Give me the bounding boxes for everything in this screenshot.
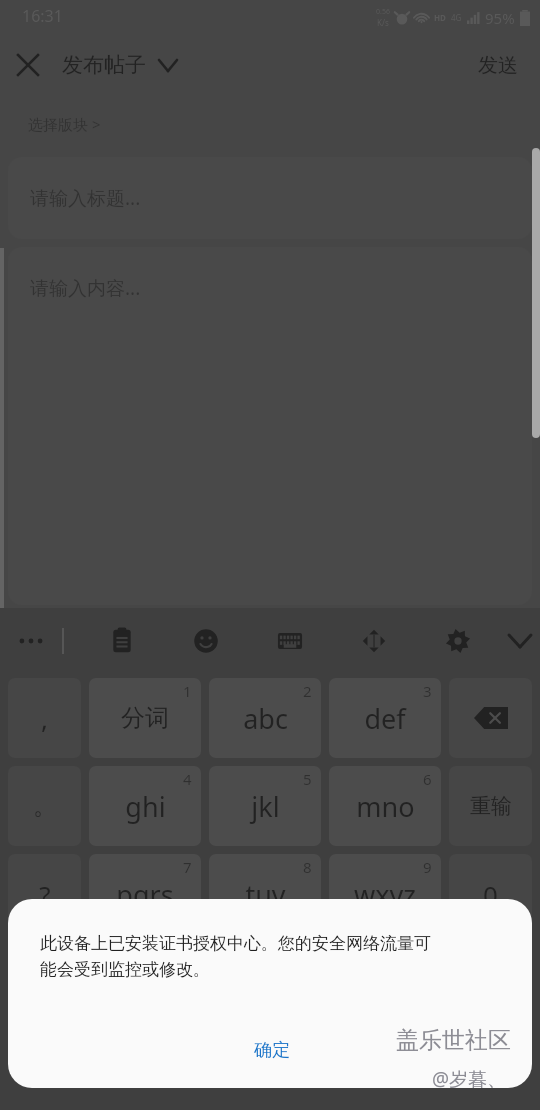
button[interactable]: def [329,678,441,758]
staticText: 此设备上已安装证书授权中心。您的安全网络流量可 能会受到监控或修改。 [40,933,431,980]
staticText: wxyz [354,876,416,913]
button[interactable]: wxyz [329,854,441,934]
staticText: 1 [183,681,192,701]
staticText: 0 [483,877,498,912]
button[interactable]: 0 [449,854,532,934]
staticText: 2 [303,681,312,701]
staticText: 6 [423,769,432,789]
staticText: 5 [303,769,312,789]
button[interactable]: 发送 [456,43,540,88]
staticText: , [41,701,48,736]
button[interactable]: 删除 [449,678,532,758]
staticText: 确定 [254,1039,290,1062]
button[interactable]: 收起键盘 [500,608,540,674]
staticText: def [364,700,406,737]
button[interactable]: 选择版块 > [20,108,109,140]
button[interactable]: 分词 [89,678,201,758]
button[interactable]: abc [209,678,321,758]
button[interactable]: mno [329,766,441,846]
staticText: 8 [303,857,312,877]
staticText: 分词 [121,703,169,733]
button[interactable]: 剪贴板 [80,608,164,674]
button[interactable]: pqrs [89,854,201,934]
staticText: mno [356,788,415,825]
staticText: K/s [377,17,389,28]
staticText: ghi [125,788,166,825]
staticText: 3 [423,681,432,701]
button[interactable]: ghi [89,766,201,846]
button[interactable]: 移动光标 [332,608,416,674]
staticText: @岁暮、 [432,1066,507,1092]
staticText: 盖乐世社区 [396,1026,511,1055]
button[interactable]: 中/英 [89,942,201,1022]
button[interactable]: 设置 [416,608,500,674]
button[interactable]: 换行 [329,942,441,1022]
button[interactable]: ? [8,854,81,934]
button[interactable]: 更多 [0,608,62,674]
staticText: 请输入内容... [30,275,141,301]
staticText: 请输入标题... [30,185,141,211]
staticText: 4 [183,769,192,789]
button[interactable]: jkl [209,766,321,846]
staticText: tuv [245,876,286,913]
button[interactable]: 确定 [240,1031,304,1070]
staticText: 重输 [470,793,512,819]
staticText: 。 [33,791,57,821]
staticText: 0.56 [376,7,390,17]
button[interactable]: 符 [8,942,81,1022]
staticText: 发送 [478,53,518,78]
staticText: 9 [423,857,432,877]
button[interactable]: 表情 [164,608,248,674]
staticText: 选择版块 > [28,114,101,134]
staticText: 7 [183,857,192,877]
button[interactable]: 空格 [209,942,321,1022]
staticText: 16:31 [22,5,63,27]
button[interactable]: 发布帖子 [56,44,184,86]
staticText: 95% [485,8,515,28]
button[interactable]: 关闭 [0,37,56,93]
staticText: ? [39,877,51,912]
staticText: 符 [34,968,56,996]
staticText: 发布帖子 [62,52,146,78]
staticText: 4G [451,12,462,23]
staticText: pqrs [116,876,174,913]
button[interactable]: 重输 [449,766,532,846]
staticText: 中/英 [122,969,168,995]
staticText: jkl [251,788,280,825]
button[interactable]: 键盘 [248,608,332,674]
button[interactable]: tuv [209,854,321,934]
staticText: HD [434,12,446,23]
staticText: abc [243,700,288,737]
